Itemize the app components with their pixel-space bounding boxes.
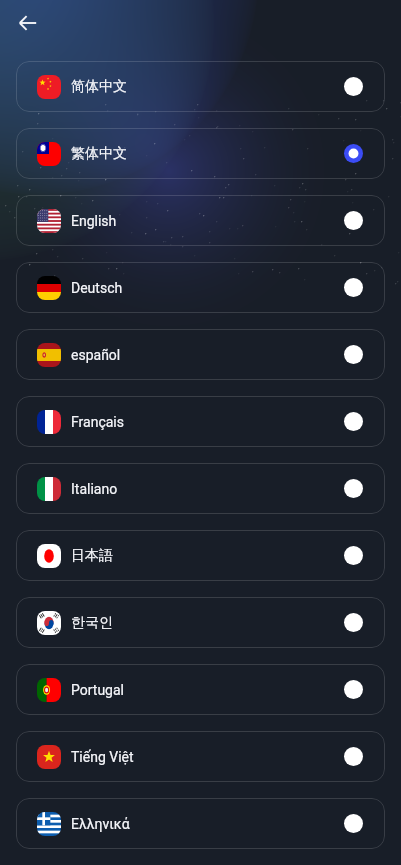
staticText: Français xyxy=(71,414,124,430)
staticText: English xyxy=(71,213,117,229)
button[interactable]: 简体中文 xyxy=(16,61,385,112)
button[interactable]: 繁体中文 xyxy=(16,128,385,179)
button[interactable]: Back xyxy=(12,7,44,39)
button[interactable]: Ελληνικά xyxy=(16,798,385,849)
button[interactable]: 한국인 xyxy=(16,597,385,648)
staticText: Tiếng Việt xyxy=(71,749,134,765)
staticText: español xyxy=(71,347,121,363)
staticText: Ελληνικά xyxy=(71,816,130,832)
staticText: 繁体中文 xyxy=(71,145,127,163)
staticText: 简体中文 xyxy=(71,78,127,96)
staticText: 日本語 xyxy=(71,547,113,565)
staticText: Italiano xyxy=(71,481,118,497)
button[interactable]: Deutsch xyxy=(16,262,385,313)
staticText: Portugal xyxy=(71,682,124,698)
button[interactable]: Portugal xyxy=(16,664,385,715)
button[interactable]: Français xyxy=(16,396,385,447)
staticText: Deutsch xyxy=(71,280,123,296)
button[interactable]: 日本語 xyxy=(16,530,385,581)
staticText: 한국인 xyxy=(71,614,113,632)
button[interactable]: Tiếng Việt xyxy=(16,731,385,782)
button[interactable]: español xyxy=(16,329,385,380)
button[interactable]: English xyxy=(16,195,385,246)
button[interactable]: Italiano xyxy=(16,463,385,514)
